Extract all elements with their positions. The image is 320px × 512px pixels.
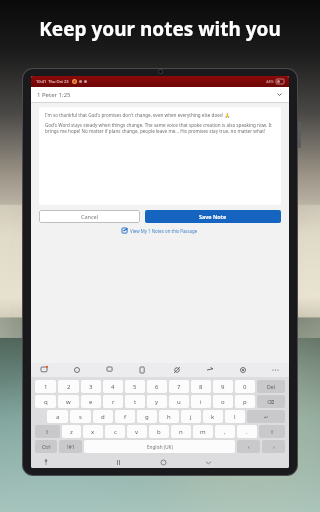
- staticText: w: [66, 398, 71, 406]
- button[interactable]: Shift: [35, 425, 60, 438]
- staticText: 1 Peter 1:25: [37, 91, 71, 99]
- button[interactable]: 7: [169, 380, 189, 393]
- button[interactable]: n: [171, 425, 191, 438]
- button[interactable]: k: [203, 410, 223, 423]
- button[interactable]: View My 1 Notes on this Passage: [39, 228, 281, 234]
- button[interactable]: Home: [158, 457, 168, 467]
- button[interactable]: Del: [257, 380, 285, 393]
- staticText: r: [112, 398, 115, 406]
- button[interactable]: d: [93, 410, 113, 423]
- staticText: c: [114, 428, 117, 436]
- button[interactable]: Keyboard tool 1: [39, 365, 49, 375]
- button[interactable]: s: [70, 410, 91, 423]
- button[interactable]: Keyboard tool 8: [271, 365, 281, 375]
- staticText: English (UK): [147, 444, 173, 450]
- staticText: ›: [273, 443, 275, 450]
- button[interactable]: f: [115, 410, 135, 423]
- button[interactable]: Recent apps: [113, 457, 123, 467]
- staticText: ‹: [248, 443, 250, 450]
- staticText: 1: [44, 383, 48, 391]
- button[interactable]: t: [125, 395, 145, 408]
- button[interactable]: y: [147, 395, 167, 408]
- button[interactable]: w: [58, 395, 79, 408]
- button[interactable]: h: [159, 410, 179, 423]
- button[interactable]: l: [225, 410, 245, 423]
- button[interactable]: m: [193, 425, 213, 438]
- staticText: 5: [133, 383, 137, 391]
- staticText: 4: [111, 383, 115, 391]
- button[interactable]: !#1: [59, 440, 82, 453]
- button[interactable]: 1 Peter 1:25: [31, 87, 289, 102]
- staticText: 3: [89, 383, 93, 391]
- button[interactable]: q: [35, 395, 56, 408]
- button[interactable]: 1: [35, 380, 56, 393]
- button[interactable]: Keyboard tool 3: [105, 365, 115, 375]
- button[interactable]: 9: [213, 380, 233, 393]
- button[interactable]: ,: [215, 425, 235, 438]
- button[interactable]: Keyboard tool 6: [205, 365, 215, 375]
- staticText: k: [211, 413, 215, 421]
- button[interactable]: z: [62, 425, 81, 438]
- staticText: .: [246, 428, 248, 436]
- staticText: v: [135, 428, 139, 436]
- button[interactable]: c: [105, 425, 125, 438]
- button[interactable]: o: [213, 395, 233, 408]
- staticText: !#1: [67, 443, 75, 450]
- button[interactable]: Hide keyboard: [203, 457, 213, 467]
- staticText: s: [79, 413, 82, 421]
- staticText: 8: [199, 383, 203, 391]
- staticText: x: [91, 428, 95, 436]
- button[interactable]: Move cursor left: [237, 440, 260, 453]
- button[interactable]: v: [127, 425, 147, 438]
- staticText: Ctrl: [42, 443, 51, 450]
- button[interactable]: 8: [191, 380, 211, 393]
- staticText: Keep your notes with you: [39, 16, 281, 42]
- button[interactable]: 4: [103, 380, 123, 393]
- staticText: View My 1 Notes on this Passage: [130, 228, 198, 234]
- button[interactable]: 3: [81, 380, 101, 393]
- staticText: 9: [221, 383, 225, 391]
- staticText: m: [200, 428, 206, 436]
- button[interactable]: 6: [147, 380, 167, 393]
- button[interactable]: 0: [235, 380, 255, 393]
- button[interactable]: e: [81, 395, 101, 408]
- button[interactable]: p: [235, 395, 255, 408]
- button[interactable]: b: [149, 425, 169, 438]
- staticText: e: [89, 398, 93, 406]
- staticText: 2: [67, 383, 71, 391]
- button[interactable]: Voice input: [43, 459, 49, 465]
- button[interactable]: x: [83, 425, 103, 438]
- button[interactable]: 5: [125, 380, 145, 393]
- button[interactable]: Cancel: [39, 210, 140, 223]
- button[interactable]: Keyboard tool 7: [238, 365, 248, 375]
- button[interactable]: Keyboard tool 2: [72, 365, 82, 375]
- button[interactable]: r: [103, 395, 123, 408]
- button[interactable]: j: [181, 410, 201, 423]
- staticText: l: [234, 413, 236, 421]
- staticText: u: [177, 398, 181, 406]
- button[interactable]: .: [237, 425, 257, 438]
- staticText: I'm so thankful that God's promises don'…: [45, 112, 231, 118]
- button[interactable]: g: [137, 410, 157, 423]
- staticText: h: [167, 413, 171, 421]
- button[interactable]: a: [47, 410, 68, 423]
- staticText: z: [70, 428, 73, 436]
- button[interactable]: Shift right: [259, 425, 285, 438]
- button[interactable]: i: [191, 395, 211, 408]
- button[interactable]: u: [169, 395, 189, 408]
- staticText: q: [44, 398, 48, 406]
- button[interactable]: Ctrl: [35, 440, 57, 453]
- button[interactable]: Enter: [247, 410, 285, 423]
- button[interactable]: Move cursor right: [262, 440, 285, 453]
- staticText: ,: [224, 428, 226, 436]
- button[interactable]: Backspace: [257, 395, 285, 408]
- staticText: 10:41 Thu Oct 23: [36, 79, 69, 84]
- staticText: 7: [177, 383, 181, 391]
- button[interactable]: Keyboard tool 4: [138, 365, 148, 375]
- button[interactable]: Save Note: [145, 210, 281, 223]
- button[interactable]: I'm so thankful that God's promises don'…: [39, 107, 281, 205]
- button[interactable]: Keyboard tool 5: [172, 365, 182, 375]
- button[interactable]: 2: [58, 380, 79, 393]
- button[interactable]: English (UK): [84, 440, 235, 453]
- staticText: ⇧: [45, 429, 50, 435]
